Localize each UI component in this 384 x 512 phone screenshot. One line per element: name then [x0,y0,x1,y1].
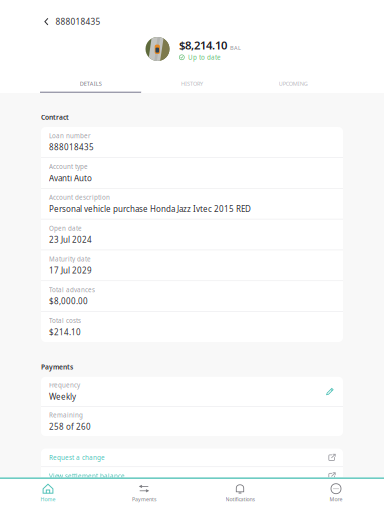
staticText: 888018435 [49,142,94,153]
staticText: Payments [41,362,73,372]
staticText: Frequency [49,381,80,389]
staticText: Maturity date [49,255,91,263]
staticText: Request a change [49,453,105,462]
staticText: 258 of 260 [49,421,91,432]
staticText: Payments [132,496,156,503]
staticText: Avanti Auto [49,173,92,183]
staticText: DETAILS [80,80,102,87]
staticText: Account description [49,193,110,202]
staticText: 17 Jul 2029 [49,265,92,276]
button[interactable]: 888018435 [44,11,110,32]
staticText: Personal vehicle purchase Honda Jazz Ivt… [49,203,251,214]
staticText: 23 Jul 2024 [49,234,92,245]
staticText: View settlement balance [49,472,125,480]
staticText: UPCOMING [279,80,308,87]
button[interactable]: Request a change [41,449,343,466]
staticText: BAL [230,44,241,51]
staticText: Up to date [188,53,221,61]
staticText: Open date [49,224,82,232]
staticText: Total costs [49,316,81,325]
staticText: Total advances [49,286,95,294]
button[interactable]: DETAILS [40,74,141,93]
staticText: Contract [41,112,69,122]
staticText: $8,214.10 [179,37,227,53]
button[interactable]: Edit frequency [324,385,336,398]
staticText: Weekly [49,391,76,402]
staticText: Notifications [225,496,254,503]
button[interactable]: UPCOMING [243,74,344,93]
staticText: Home [40,496,55,503]
staticText: $214.10 [49,327,81,337]
button[interactable]: View settlement balance [41,467,343,485]
button[interactable]: HISTORY [141,74,243,93]
staticText: More [329,496,342,503]
button[interactable]: Home [0,479,96,512]
staticText: $8,000.00 [49,296,88,307]
staticText: Loan number [49,132,91,140]
staticText: 888018435 [55,16,100,27]
button[interactable]: More [288,479,384,512]
button[interactable]: Payments [96,479,192,512]
staticText: Account type [49,162,88,171]
staticText: HISTORY [181,80,203,87]
button[interactable]: Notifications [192,479,288,512]
staticText: Remaining [49,411,83,419]
